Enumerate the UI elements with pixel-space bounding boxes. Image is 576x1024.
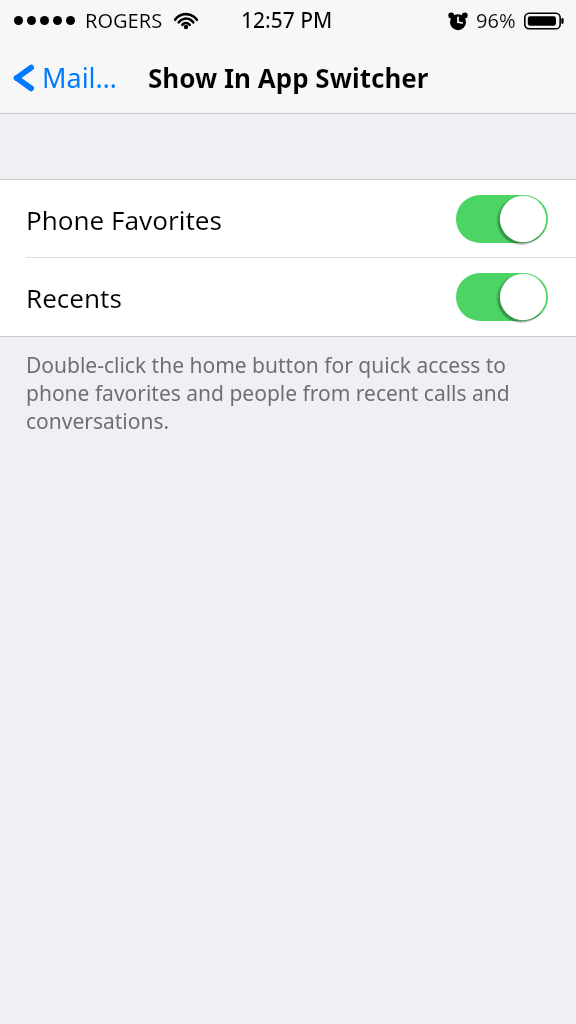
- staticText: Mail…: [42, 59, 117, 96]
- staticText: Phone Favorites: [26, 202, 222, 237]
- staticText: Show In App Switcher: [148, 60, 429, 95]
- button[interactable]: Recents: [0, 258, 576, 336]
- button[interactable]: Toggle: [456, 271, 548, 323]
- staticText: Double-click the home button for quick a…: [26, 351, 546, 435]
- staticText: ROGERS: [85, 7, 163, 34]
- button[interactable]: Back: [0, 53, 125, 102]
- button[interactable]: Phone Favorites: [0, 180, 576, 258]
- staticText: Recents: [26, 280, 122, 315]
- staticText: 96%: [476, 7, 516, 34]
- other: Back: [14, 60, 36, 96]
- staticText: 12:57 PM: [241, 6, 333, 35]
- button[interactable]: Toggle: [456, 193, 548, 245]
